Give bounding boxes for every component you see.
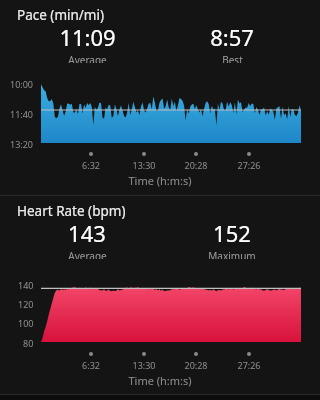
staticText: 100 [18, 317, 34, 329]
staticText: 8:57 [210, 22, 254, 52]
staticText: 13:30 [132, 159, 156, 171]
staticText: Average [68, 249, 107, 259]
staticText: 10:00 [10, 78, 34, 90]
staticText: 13:30 [132, 359, 156, 371]
button[interactable]: Pace (min/mi) [0, 0, 320, 195]
staticText: 11:40 [10, 108, 34, 120]
staticText: 152 [213, 218, 251, 248]
staticText: Pace (min/mi) [17, 6, 105, 24]
staticText: Time (h:m:s) [128, 373, 192, 388]
staticText: 27:26 [237, 159, 261, 171]
staticText: 6:32 [82, 359, 100, 371]
staticText: 120 [18, 298, 34, 310]
staticText: 20:28 [184, 359, 208, 371]
staticText: 27:26 [237, 359, 261, 371]
staticText: 143 [68, 218, 106, 248]
staticText: 13:20 [10, 138, 34, 150]
staticText: Average [68, 53, 107, 63]
staticText: 20:28 [184, 159, 208, 171]
staticText: 6:32 [82, 159, 100, 171]
staticText: Heart Rate (bpm) [17, 202, 126, 220]
staticText: Maximum [208, 249, 256, 259]
staticText: Time (h:m:s) [128, 173, 192, 188]
staticText: 80 [23, 337, 34, 349]
staticText: 140 [18, 279, 34, 291]
button[interactable]: Heart Rate (bpm) [0, 196, 320, 394]
staticText: 11:09 [59, 22, 116, 52]
staticText: Best [222, 53, 243, 63]
